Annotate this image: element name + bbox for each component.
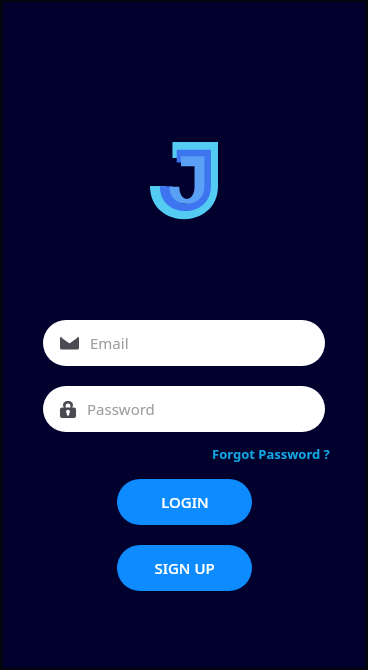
staticText: SIGN UP — [154, 558, 215, 578]
other: App logo — [150, 142, 218, 220]
button[interactable]: SIGN UP — [117, 545, 252, 591]
button[interactable]: LOGIN — [117, 479, 252, 525]
staticText: Password — [87, 399, 155, 419]
staticText: Forgot Password ? — [212, 445, 330, 463]
other: Email — [60, 335, 79, 351]
button[interactable]: Forgot Password ? — [210, 443, 332, 465]
other: Password — [60, 400, 76, 418]
staticText: Email — [90, 333, 129, 353]
button[interactable]: Email — [43, 320, 325, 366]
staticText: LOGIN — [161, 492, 209, 512]
button[interactable]: Password — [43, 386, 325, 432]
